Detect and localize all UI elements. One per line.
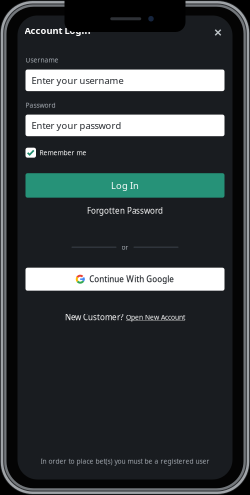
staticText: Remember me <box>39 148 86 157</box>
button[interactable]: Remember me <box>25 147 224 158</box>
button[interactable]: Continue With Google <box>25 268 224 291</box>
button[interactable]: Forgotten Password <box>17 206 232 216</box>
staticText: Account Login <box>24 24 90 37</box>
button[interactable]: Close <box>208 21 226 39</box>
staticText: New Customer? <box>65 312 123 322</box>
staticText: Open New Account <box>126 313 185 322</box>
button[interactable]: Open New Account <box>123 313 185 322</box>
staticText: Forgotten Password <box>87 205 163 216</box>
staticText: Enter your username <box>31 74 123 86</box>
staticText: Log In <box>111 179 139 192</box>
staticText: Continue With Google <box>89 274 174 284</box>
staticText: or <box>121 243 128 252</box>
staticText: In order to place bet(s) you must be a r… <box>40 457 209 465</box>
staticText: Enter your password <box>31 119 121 132</box>
staticText: Username <box>25 56 58 64</box>
button[interactable]: Log In <box>25 173 224 198</box>
staticText: Password <box>25 101 55 110</box>
